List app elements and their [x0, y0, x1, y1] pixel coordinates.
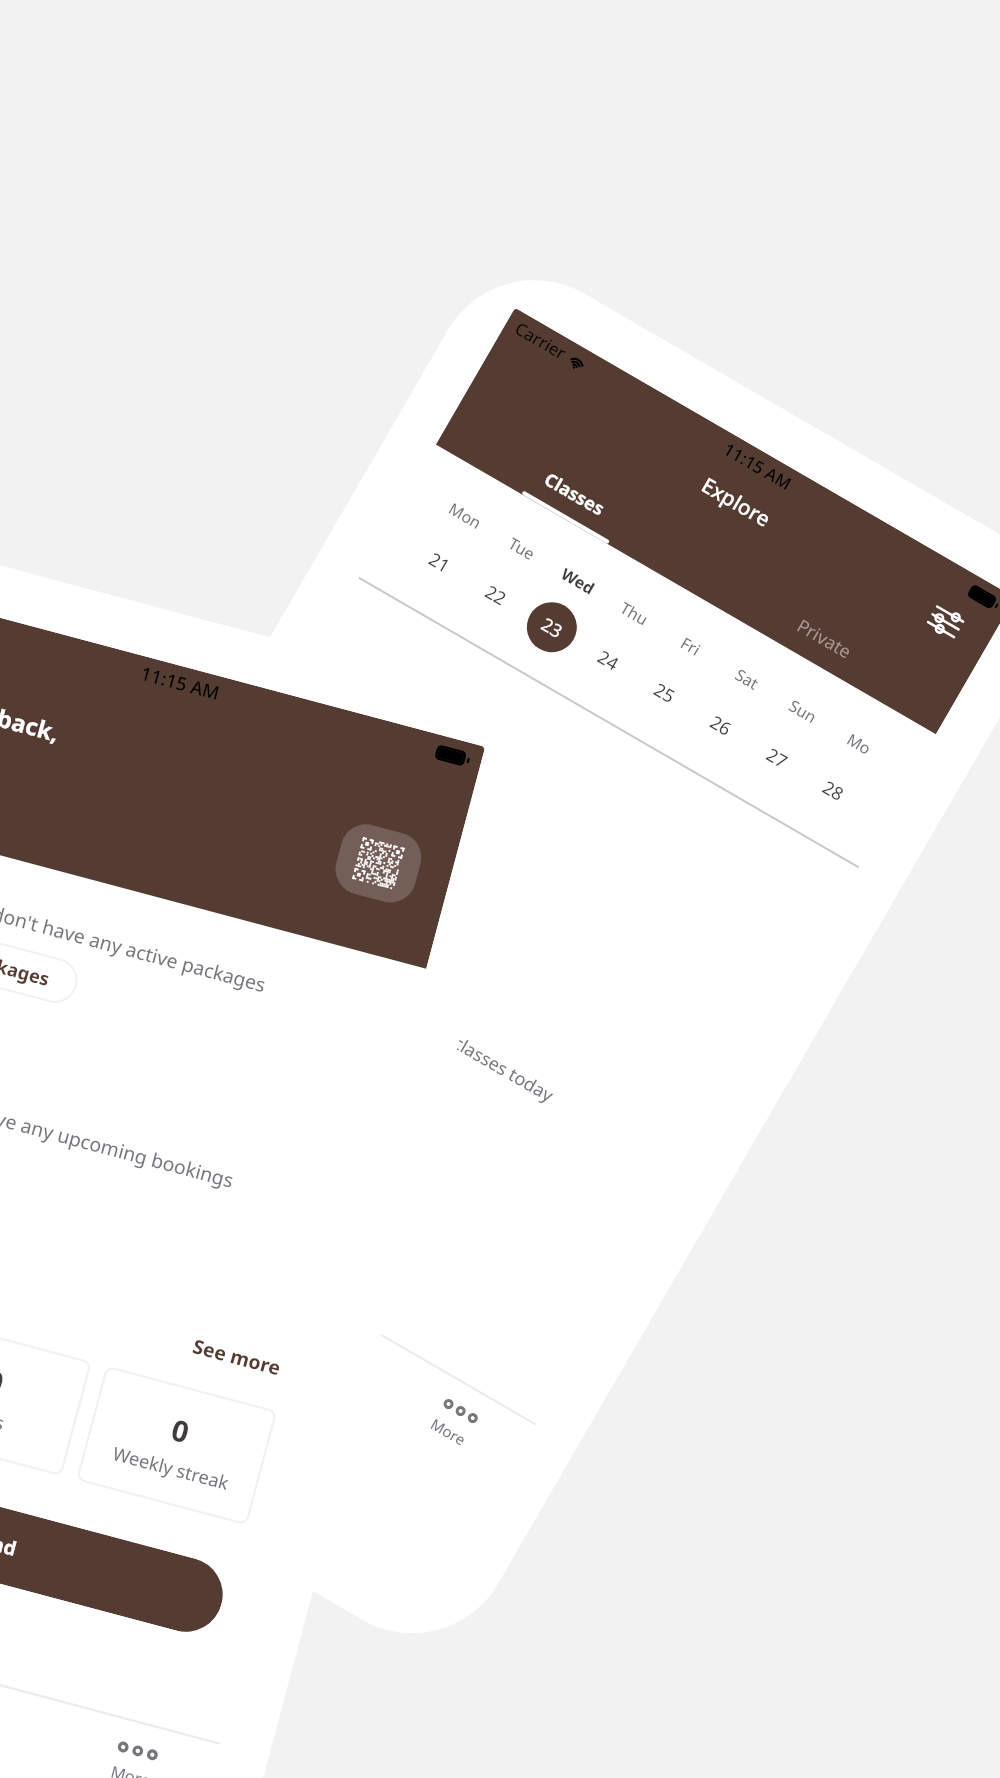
button[interactable]: More — [371, 1353, 535, 1493]
staticText: Sun — [785, 695, 821, 728]
staticText: 27 — [762, 742, 792, 774]
staticText: Explore — [696, 471, 776, 534]
staticText: 25 — [649, 677, 680, 709]
button[interactable]: Filters — [922, 599, 969, 645]
button[interactable]: Mo — [792, 718, 893, 828]
button[interactable]: Refer a friend — [0, 1425, 231, 1640]
staticText: 22 — [480, 579, 511, 611]
staticText: 23 — [537, 612, 567, 644]
staticText: Sat — [731, 664, 763, 695]
staticText: Classes — [540, 467, 609, 521]
staticText: Wed — [557, 563, 599, 599]
staticText: Private — [792, 613, 856, 664]
staticText: 11:15 AM — [138, 661, 223, 705]
button[interactable]: Show QR code — [330, 818, 427, 908]
staticText: Fri — [677, 632, 705, 661]
button[interactable]: Tab — [0, 1136, 160, 1275]
staticText: You don't have any classes today — [306, 948, 559, 1108]
staticText: 0 — [0, 1360, 9, 1403]
staticText: Thu — [616, 597, 652, 630]
button[interactable]: Private — [693, 556, 955, 722]
button[interactable]: 0 — [76, 1365, 277, 1526]
staticText: More — [109, 1760, 154, 1778]
button[interactable]: Fri — [623, 620, 724, 730]
staticText: days — [0, 1401, 7, 1436]
staticText: More — [427, 1414, 470, 1450]
button[interactable]: Mon — [398, 490, 499, 600]
staticText: 24 — [593, 644, 624, 677]
staticText: 11:15 AM — [719, 437, 796, 495]
staticText: You don't have any upcoming bookings — [0, 1076, 237, 1194]
staticText: Carrier — [511, 317, 571, 365]
button[interactable]: Wed — [511, 555, 612, 665]
button[interactable]: Tab — [121, 1208, 285, 1348]
staticText: 28 — [818, 775, 849, 807]
staticText: Buy packages — [0, 935, 53, 991]
button[interactable]: Tab — [245, 1280, 410, 1420]
staticText: Welcome back, — [0, 671, 64, 748]
button[interactable]: 0 — [0, 1316, 92, 1476]
staticText: Weekly streak — [110, 1441, 232, 1495]
button[interactable]: Sun — [736, 686, 837, 795]
button[interactable]: Classes — [443, 411, 705, 577]
button[interactable]: See more — [190, 1333, 284, 1382]
button[interactable]: More — [47, 1705, 220, 1778]
staticText: Refer a friend — [0, 1502, 20, 1562]
button[interactable]: Tue — [454, 523, 555, 632]
staticText: 0 — [167, 1409, 194, 1452]
staticText: 21 — [424, 547, 455, 579]
button[interactable]: Thu — [567, 588, 668, 697]
button[interactable]: Sat — [679, 653, 780, 763]
button[interactable]: Buy packages — [0, 917, 83, 1008]
staticText: Mo — [843, 728, 876, 760]
staticText: Tue — [504, 532, 540, 565]
staticText: Mon — [445, 498, 486, 534]
staticText: You don't have any active packages — [0, 890, 269, 999]
staticText: 26 — [705, 710, 736, 742]
